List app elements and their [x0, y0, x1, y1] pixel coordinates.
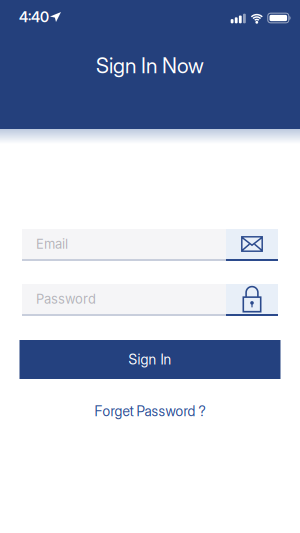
- button[interactable]: Password: [22, 284, 278, 316]
- staticText: Email: [36, 236, 68, 252]
- staticText: Password: [36, 291, 96, 307]
- button[interactable]: Email: [22, 229, 278, 261]
- staticText: Forget Password ?: [94, 403, 205, 420]
- staticText: 4:40: [19, 8, 49, 26]
- staticText: Sign In Now: [96, 53, 204, 78]
- button[interactable]: Forget Password ?: [94, 403, 205, 420]
- button[interactable]: Sign In: [19, 340, 280, 379]
- staticText: Sign In: [128, 351, 171, 368]
